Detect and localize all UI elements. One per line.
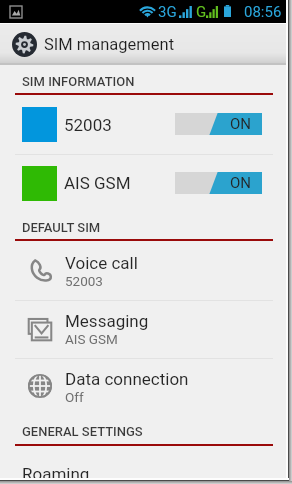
staticText: DEFAULT SIM <box>22 220 101 235</box>
staticText: 52003 <box>65 273 103 289</box>
other: Settings <box>12 32 37 57</box>
staticText: Data connection <box>65 369 189 389</box>
button[interactable]: Settings <box>0 24 287 65</box>
staticText: GENERAL SETTINGS <box>22 424 143 439</box>
staticText: G <box>196 3 207 21</box>
staticText: Roaming <box>22 464 90 484</box>
button[interactable] <box>0 359 287 417</box>
staticText: 52003 <box>64 115 112 135</box>
staticText: 08:56 <box>244 3 282 21</box>
staticText: AIS GSM <box>64 173 131 193</box>
button[interactable] <box>0 155 287 212</box>
staticText: ON <box>230 174 252 192</box>
staticText: AIS GSM <box>65 331 118 347</box>
staticText: Voice call <box>65 253 138 273</box>
staticText: SIM INFORMATION <box>22 74 135 89</box>
staticText: 3G <box>158 3 177 21</box>
button[interactable]: Toggle SIM on <box>175 172 262 194</box>
staticText: SIM management <box>44 35 175 54</box>
button[interactable]: Roaming <box>0 446 287 479</box>
button[interactable] <box>0 95 287 154</box>
button[interactable]: Toggle SIM on <box>175 113 262 135</box>
staticText: ON <box>230 115 252 133</box>
button[interactable] <box>0 301 287 359</box>
staticText: Off <box>65 389 84 405</box>
button[interactable] <box>0 241 287 299</box>
staticText: Messaging <box>65 311 149 331</box>
